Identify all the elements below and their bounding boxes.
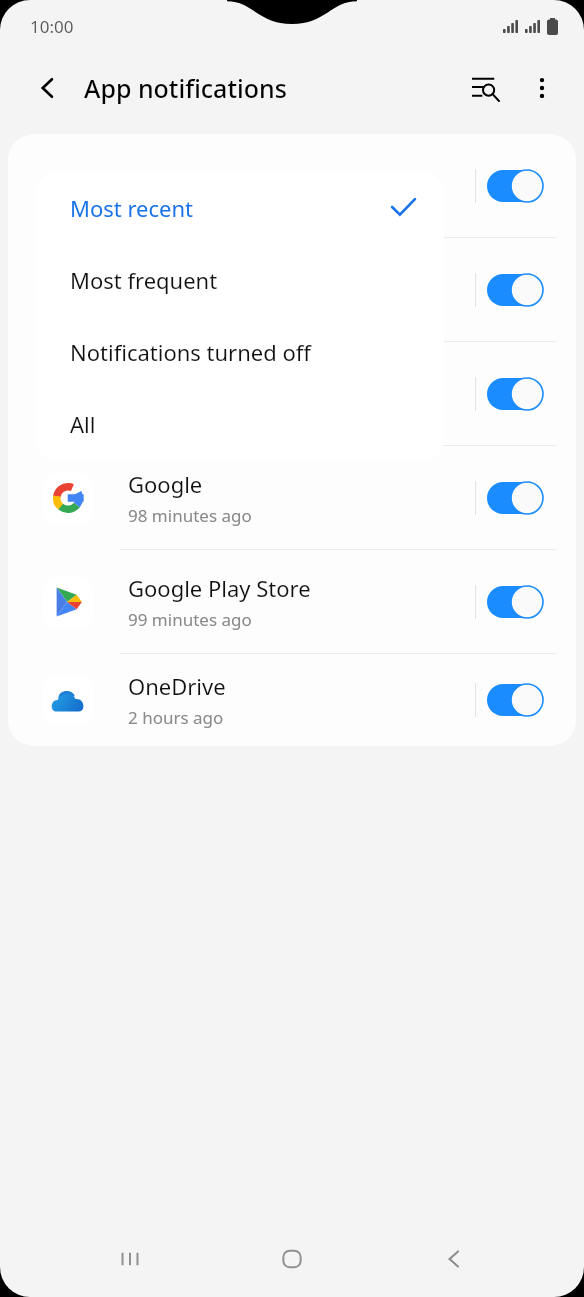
button[interactable]: Google — [8, 446, 576, 549]
button[interactable]: Notifications turned off — [36, 316, 444, 388]
button[interactable]: Toggle notifications — [476, 260, 554, 320]
button[interactable]: Toggle notifications — [476, 364, 554, 424]
staticText: Google — [128, 469, 203, 499]
staticText: 98 minutes ago — [128, 504, 252, 527]
staticText: 2 hours ago — [128, 706, 224, 729]
button[interactable]: Most recent — [36, 172, 444, 244]
button[interactable]: All — [36, 388, 444, 460]
button[interactable]: Toggle notifications — [476, 468, 554, 528]
staticText: Google Play Store — [128, 573, 311, 603]
button[interactable]: Toggle notifications — [476, 670, 554, 730]
staticText: 10:00 — [30, 15, 74, 38]
button[interactable]: Toggle notifications — [8, 134, 576, 237]
staticText: Notifications turned off — [70, 337, 416, 367]
button[interactable]: Most frequent — [36, 244, 444, 316]
button[interactable]: Phone — [8, 342, 576, 445]
button[interactable]: Back — [24, 64, 72, 112]
button[interactable]: Google Play Store — [8, 550, 576, 653]
staticText: OneDrive — [128, 671, 226, 701]
staticText: Most frequent — [70, 265, 416, 295]
button[interactable]: Home — [260, 1227, 324, 1291]
button[interactable]: Toggle notifications — [476, 572, 554, 632]
button[interactable]: OneDrive — [8, 654, 576, 746]
button[interactable]: Recents — [98, 1227, 162, 1291]
staticText: Most recent — [70, 193, 390, 223]
staticText: All — [70, 409, 416, 439]
button[interactable]: Search — [462, 64, 510, 112]
staticText: 99 minutes ago — [128, 608, 252, 631]
button[interactable]: Toggle notifications — [8, 238, 576, 341]
button[interactable]: Toggle notifications — [476, 156, 554, 216]
staticText: App notifications — [84, 71, 287, 105]
button[interactable]: Back — [422, 1227, 486, 1291]
button[interactable]: More options — [518, 64, 566, 112]
